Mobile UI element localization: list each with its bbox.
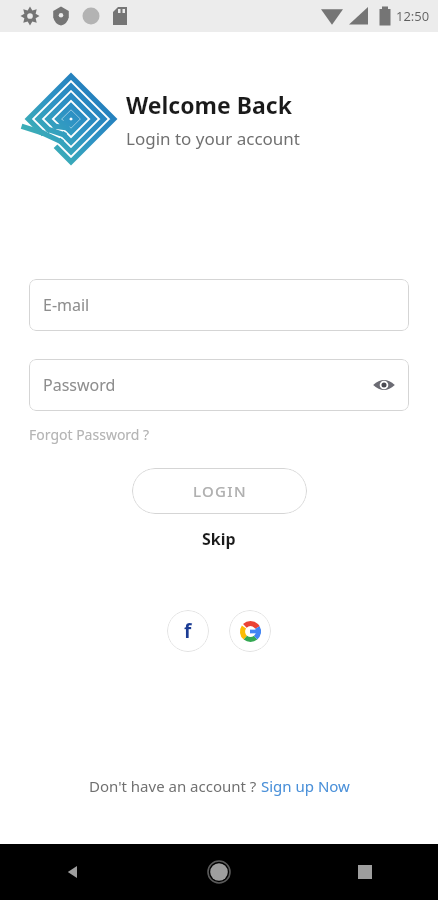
- button[interactable]: Password: [29, 359, 409, 411]
- button[interactable]: Back: [0, 844, 146, 900]
- staticText: E-mail: [43, 294, 90, 316]
- button[interactable]: Show password: [369, 370, 399, 400]
- button[interactable]: Home: [146, 844, 292, 900]
- button[interactable]: Recent apps: [292, 844, 438, 900]
- button[interactable]: Sign in with Google: [229, 610, 271, 652]
- staticText: Don't have an account ?: [89, 776, 261, 796]
- staticText: Welcome Back: [126, 89, 292, 120]
- button[interactable]: E-mail: [29, 279, 409, 331]
- button[interactable]: Sign in with Facebook: [167, 610, 209, 652]
- staticText: Password: [43, 374, 116, 396]
- button[interactable]: Skip: [194, 524, 244, 554]
- staticText: 12:50: [396, 7, 430, 25]
- button[interactable]: Forgot Password ?: [27, 423, 152, 446]
- staticText: LOGIN: [193, 481, 247, 501]
- button[interactable]: Sign up Now: [261, 774, 350, 798]
- staticText: Login to your account: [126, 127, 300, 150]
- button[interactable]: LOGIN: [132, 468, 307, 514]
- staticText: f: [184, 618, 192, 644]
